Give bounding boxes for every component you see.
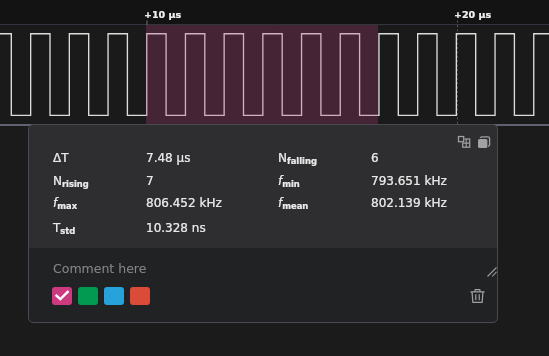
staticText: Nrising [53,174,89,189]
staticText: Tstd [53,221,76,236]
staticText: +20 µs [454,9,492,20]
staticText: 806.452 kHz [146,196,222,210]
button[interactable]: Red [130,287,150,305]
staticText: fmin [278,174,300,189]
button[interactable]: Arrange layout [455,133,472,150]
button[interactable]: Delete measurement [466,284,488,306]
staticText: fmean [278,196,309,211]
button[interactable]: Copy values [475,133,492,150]
staticText: ΔT [53,151,69,165]
button[interactable]: Pink [52,287,72,305]
staticText: 7.48 µs [146,151,191,165]
staticText: 793.651 kHz [371,174,447,188]
staticText: fmax [53,196,78,211]
button[interactable]: Comment here [53,261,147,276]
staticText: 7 [146,174,154,188]
staticText: +10 µs [144,9,182,20]
staticText: 802.139 kHz [371,196,447,210]
staticText: Nfalling [278,151,317,166]
button[interactable]: Green [78,287,98,305]
staticText: 6 [371,151,379,165]
staticText: 10.328 ns [146,221,206,235]
button[interactable]: Blue [104,287,124,305]
